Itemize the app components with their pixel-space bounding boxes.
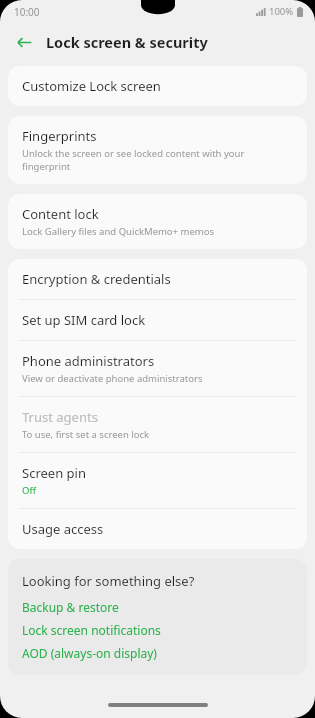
button[interactable]: AOD (always-on display) xyxy=(22,645,293,661)
button[interactable]: Content lock xyxy=(8,194,307,249)
staticText: 100% xyxy=(269,5,294,18)
staticText: Lock Gallery files and QuickMemo+ memos xyxy=(22,225,214,238)
staticText: Trust agents xyxy=(22,408,98,426)
button[interactable]: Lock screen notifications xyxy=(22,622,293,638)
staticText: Unlock the screen or see locked content … xyxy=(22,147,293,173)
staticText: Looking for something else? xyxy=(22,572,195,590)
staticText: Screen pin xyxy=(22,464,86,482)
button[interactable]: Trust agents xyxy=(8,397,307,452)
staticText: Customize Lock screen xyxy=(22,77,161,95)
button[interactable]: Backup & restore xyxy=(22,599,293,615)
button[interactable]: Back xyxy=(11,29,37,55)
staticText: Backup & restore xyxy=(22,599,119,615)
button[interactable]: Usage access xyxy=(8,509,307,549)
button[interactable]: Screen pin xyxy=(8,453,307,508)
staticText: Content lock xyxy=(22,205,99,223)
staticText: Phone administrators xyxy=(22,352,155,370)
staticText: Fingerprints xyxy=(22,127,97,145)
button[interactable]: Customize Lock screen xyxy=(8,66,307,106)
staticText: Usage access xyxy=(22,520,104,538)
staticText: 10:00 xyxy=(14,5,40,19)
staticText: View or deactivate phone administrators xyxy=(22,372,203,385)
button[interactable]: Encryption & credentials xyxy=(8,259,307,299)
button[interactable]: Set up SIM card lock xyxy=(8,300,307,340)
button[interactable]: Phone administrators xyxy=(8,341,307,396)
staticText: To use, first set a screen lock xyxy=(22,428,150,441)
staticText: AOD (always-on display) xyxy=(22,645,157,661)
staticText: Lock screen notifications xyxy=(22,622,161,638)
staticText: Encryption & credentials xyxy=(22,270,171,288)
staticText: Lock screen & security xyxy=(46,32,208,52)
staticText: Off xyxy=(22,484,36,497)
staticText: Set up SIM card lock xyxy=(22,311,146,329)
button[interactable]: Fingerprints xyxy=(8,116,307,184)
